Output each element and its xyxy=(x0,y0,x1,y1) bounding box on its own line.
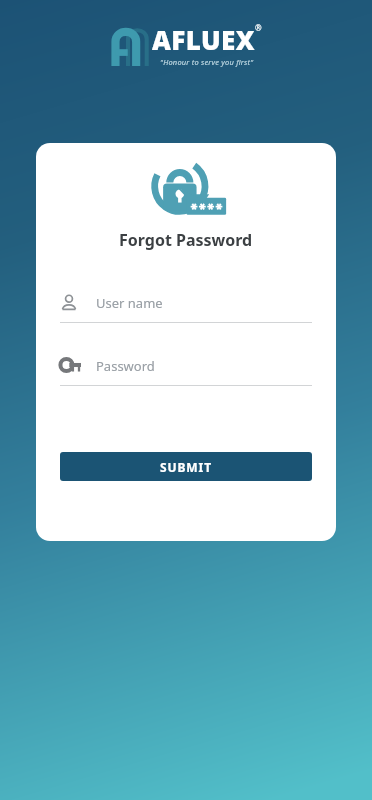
staticText: SUBMIT xyxy=(160,459,212,475)
staticText: User name xyxy=(96,294,163,312)
other: Afluex logo xyxy=(111,24,145,66)
staticText: ® xyxy=(255,22,262,33)
staticText: "Honour to serve you first" xyxy=(160,57,254,67)
button[interactable]: Password xyxy=(60,352,312,386)
staticText: Password xyxy=(96,357,155,375)
staticText: Forgot Password xyxy=(119,229,253,251)
button[interactable]: SUBMIT xyxy=(60,452,312,481)
button[interactable]: User name xyxy=(60,289,312,323)
staticText: AFLUEX xyxy=(152,22,255,57)
